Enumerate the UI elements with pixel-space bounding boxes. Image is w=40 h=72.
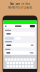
- button[interactable]: Calm: [5, 37, 14, 40]
- button[interactable]: Back: [5, 25, 7, 27]
- button[interactable]: Tense: [15, 37, 21, 40]
- button[interactable]: Save: [30, 25, 35, 27]
- staticText: moments of pause: [7, 6, 32, 9]
- staticText: Take care in the: [9, 2, 30, 6]
